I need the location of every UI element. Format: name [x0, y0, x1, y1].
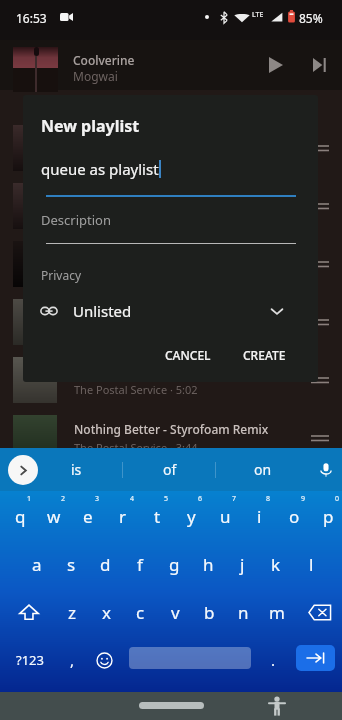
staticText: Mogwai: [73, 68, 118, 84]
button[interactable]: e: [71, 492, 105, 540]
staticText: f: [137, 553, 143, 576]
button[interactable]: Expand suggestions: [8, 455, 38, 485]
button[interactable]: Enter: [296, 645, 335, 671]
staticText: Nothing Better - Styrofoam Remix: [74, 421, 269, 437]
button[interactable]: CANCEL: [157, 341, 219, 369]
button[interactable]: l: [294, 540, 328, 588]
button[interactable]: Emoji: [86, 636, 122, 684]
staticText: 1: [27, 494, 32, 504]
staticText: t: [154, 505, 161, 528]
staticText: Mogwai · 5:36: [74, 150, 146, 165]
button[interactable]: Backspace: [295, 588, 342, 636]
staticText: of: [163, 460, 177, 479]
button[interactable]: i: [242, 492, 276, 540]
button[interactable]: of: [123, 448, 216, 491]
button[interactable]: We Will Become Silhouettes: [0, 351, 342, 409]
staticText: y: [187, 505, 196, 528]
staticText: h: [203, 553, 214, 576]
button[interactable]: s: [54, 540, 88, 588]
button[interactable]: f: [123, 540, 157, 588]
staticText: g: [169, 553, 180, 576]
button[interactable]: is: [30, 448, 123, 491]
button[interactable]: k: [259, 540, 293, 588]
button[interactable]: Party in the USA: [0, 177, 342, 235]
staticText: Such Great Heights: [74, 305, 185, 321]
staticText: s: [67, 553, 76, 576]
staticText: Unlisted: [73, 301, 132, 321]
staticText: p: [323, 505, 334, 528]
button[interactable]: d: [88, 540, 122, 588]
button[interactable]: y: [174, 492, 208, 540]
staticText: r: [119, 505, 127, 528]
button[interactable]: v: [158, 588, 192, 636]
button[interactable]: x: [89, 588, 123, 636]
button[interactable]: c: [123, 588, 157, 636]
staticText: 7: [232, 494, 237, 504]
button[interactable]: Remurdered: [0, 119, 342, 177]
button[interactable]: Voice input: [309, 448, 342, 491]
button[interactable]: n: [226, 588, 260, 636]
button[interactable]: Shift: [2, 588, 55, 636]
button[interactable]: u: [208, 492, 242, 540]
button[interactable]: ?123: [7, 636, 52, 684]
button[interactable]: m: [260, 588, 294, 636]
button[interactable]: j: [225, 540, 259, 588]
button[interactable]: g: [157, 540, 191, 588]
staticText: 8: [266, 494, 271, 504]
staticText: c: [136, 601, 145, 624]
button[interactable]: b: [192, 588, 226, 636]
button[interactable]: Unlisted: [35, 298, 286, 324]
button[interactable]: Space: [129, 647, 251, 669]
button[interactable]: q: [3, 492, 37, 540]
button[interactable]: Play: [259, 40, 293, 90]
staticText: z: [68, 601, 76, 624]
staticText: 16:53: [16, 10, 47, 26]
button[interactable]: Nothing Better - Styrofoam Remix: [0, 409, 342, 467]
staticText: New playlist: [41, 115, 140, 137]
staticText: 3: [95, 494, 100, 504]
button[interactable]: r: [106, 492, 140, 540]
button[interactable]: h: [191, 540, 225, 588]
staticText: on: [254, 460, 272, 479]
button[interactable]: t: [140, 492, 174, 540]
staticText: Coolverine: [73, 52, 135, 68]
staticText: d: [100, 553, 111, 576]
staticText: 5: [164, 494, 169, 504]
staticText: is: [71, 460, 82, 479]
button[interactable]: o: [277, 492, 311, 540]
staticText: n: [238, 601, 249, 624]
staticText: 4: [130, 494, 135, 504]
staticText: CREATE: [243, 347, 286, 363]
staticText: b: [204, 601, 215, 624]
staticText: 0: [335, 494, 340, 504]
staticText: v: [171, 601, 180, 624]
staticText: m: [269, 601, 285, 624]
button[interactable]: CREATE: [235, 341, 294, 369]
staticText: x: [102, 601, 111, 624]
button[interactable]: Lock Me Up: [0, 235, 342, 293]
button[interactable]: Skip next: [302, 40, 336, 90]
staticText: Description: [41, 211, 111, 229]
button[interactable]: w: [37, 492, 71, 540]
staticText: The Postal Service · 5:02: [74, 382, 198, 397]
staticText: o: [289, 505, 300, 528]
button[interactable]: a: [20, 540, 54, 588]
button[interactable]: ,: [54, 636, 90, 684]
staticText: w: [47, 505, 61, 528]
staticText: LTE: [252, 10, 264, 20]
button[interactable]: Accessibility: [263, 692, 291, 720]
staticText: .: [271, 650, 276, 670]
staticText: Privacy: [41, 267, 82, 283]
button[interactable]: Such Great Heights: [0, 293, 342, 351]
staticText: 85%: [299, 10, 323, 26]
staticText: q: [15, 505, 26, 528]
button[interactable]: .: [255, 636, 291, 684]
button[interactable]: on: [216, 448, 309, 491]
staticText: 2: [61, 494, 66, 504]
button[interactable]: p: [311, 492, 342, 540]
button[interactable]: z: [55, 588, 89, 636]
staticText: The Postal Service · 3:44: [74, 440, 198, 455]
